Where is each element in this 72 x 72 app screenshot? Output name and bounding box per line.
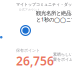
staticText: マイトップコミュニティ・ダッシュボードへ bbox=[16, 2, 72, 7]
staticText: 公式アカウント bbox=[19, 8, 40, 11]
staticText: 素晴らしい bbox=[53, 52, 72, 57]
staticText: 愛をポイム bbox=[53, 57, 72, 62]
staticText: と1秒の◯◯こでイ bbox=[36, 16, 72, 23]
staticText: 26,756 bbox=[16, 53, 54, 69]
staticText: 保有ポイント bbox=[16, 48, 40, 53]
staticText: 観光名所と絶品エキス bbox=[36, 10, 72, 17]
